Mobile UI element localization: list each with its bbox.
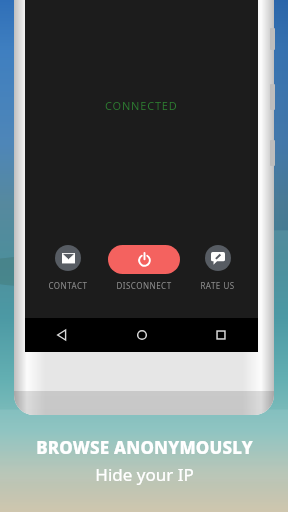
button[interactable]: Recents — [206, 320, 236, 350]
staticText: DISCONNECT — [116, 280, 172, 291]
staticText: CONTACT — [48, 280, 88, 291]
staticText: Hide your IP — [95, 463, 194, 486]
button[interactable]: Rate us — [187, 245, 248, 291]
button[interactable]: Home — [127, 320, 157, 350]
button[interactable]: Back — [47, 320, 77, 350]
staticText: CONNECTED — [105, 98, 178, 113]
button[interactable]: Contact — [35, 245, 101, 291]
button[interactable]: DISCONNECT — [101, 245, 187, 291]
staticText: BROWSE ANONYMOUSLY — [36, 436, 253, 459]
staticText: RATE US — [200, 280, 235, 291]
